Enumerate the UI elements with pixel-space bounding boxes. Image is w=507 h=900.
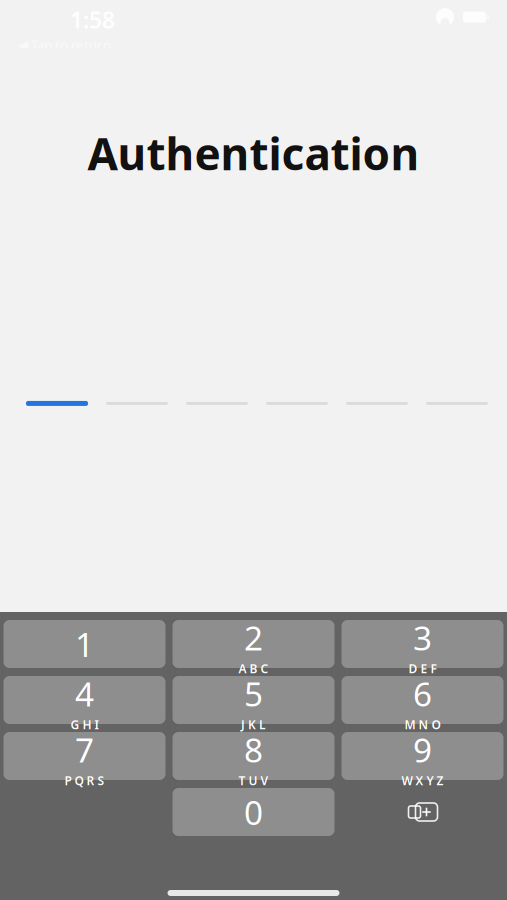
staticText: M N O	[404, 717, 440, 733]
staticText: A B C	[238, 661, 268, 677]
button[interactable]: 2	[172, 620, 334, 668]
button[interactable]: Delete	[341, 788, 503, 836]
staticText: W X Y Z	[401, 773, 443, 789]
button[interactable]: 7	[3, 732, 165, 780]
button[interactable]: 4	[3, 676, 165, 724]
staticText: 1	[75, 622, 94, 666]
staticText: J K L	[241, 717, 266, 733]
button[interactable]: 3	[341, 620, 503, 668]
staticText: 9	[413, 727, 432, 772]
button[interactable]: 0	[172, 788, 334, 836]
staticText: 4	[75, 671, 94, 716]
staticText: 3	[413, 615, 432, 660]
button[interactable]: 6	[341, 676, 503, 724]
button[interactable]: 9	[341, 732, 503, 780]
staticText: 8	[244, 727, 263, 772]
button[interactable]: 8	[172, 732, 334, 780]
staticText: G H I	[70, 717, 98, 733]
staticText: 7	[75, 727, 94, 772]
button[interactable]: 1	[3, 620, 165, 668]
staticText: 6	[413, 671, 432, 716]
staticText: Authentication	[87, 124, 419, 182]
staticText: T U V	[238, 773, 268, 789]
button[interactable]: 5	[172, 676, 334, 724]
staticText: 0	[244, 790, 263, 834]
staticText: 1:58	[70, 5, 115, 35]
staticText: 2	[244, 615, 263, 660]
staticText: 5	[244, 671, 263, 716]
staticText: P Q R S	[64, 773, 104, 789]
staticText: D E F	[408, 661, 436, 677]
